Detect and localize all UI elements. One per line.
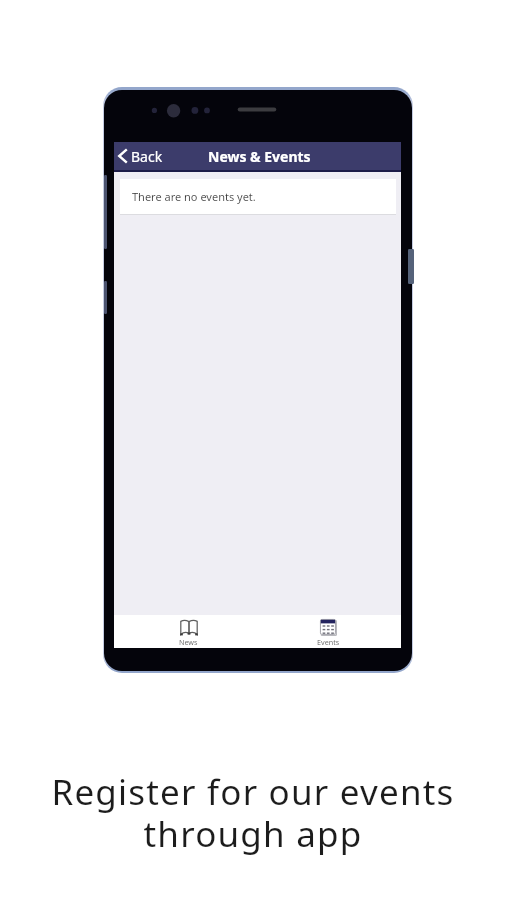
staticText: Back bbox=[131, 147, 163, 166]
staticText: News & Events bbox=[208, 147, 311, 166]
staticText: There are no events yet. bbox=[132, 189, 256, 204]
button[interactable]: News bbox=[119, 615, 258, 648]
staticText: Register for our events through app bbox=[43, 768, 463, 857]
button[interactable]: Events bbox=[258, 615, 398, 648]
staticText: Events bbox=[317, 637, 340, 647]
button[interactable]: Back bbox=[114, 142, 171, 170]
button[interactable]: There are no events yet. bbox=[120, 179, 396, 214]
staticText: News bbox=[179, 637, 198, 647]
